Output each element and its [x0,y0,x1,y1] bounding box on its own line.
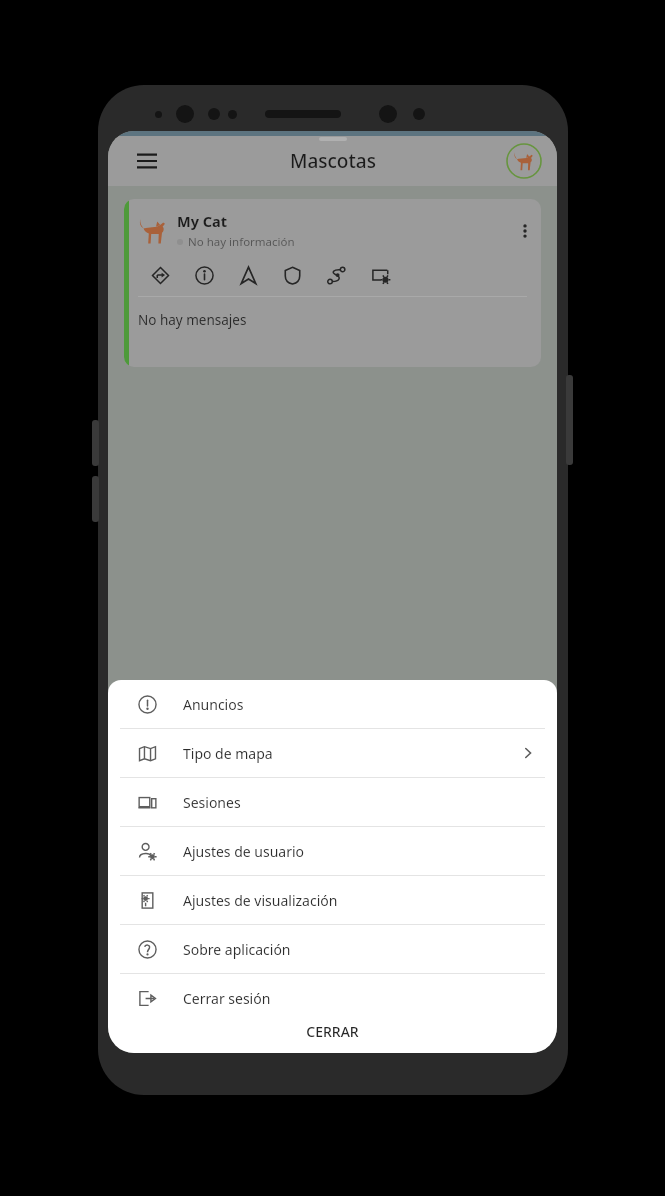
staticText: No hay mensajes [138,311,247,329]
staticText: Sesiones [183,793,241,812]
staticText: Sobre aplicación [183,940,291,959]
staticText: Tipo de mapa [183,744,273,763]
button[interactable]: Seguridad [270,260,314,290]
staticText: CERRAR [306,1022,359,1041]
button[interactable]: Información [182,260,226,290]
button[interactable]: Más opciones [509,215,541,247]
staticText: Mascotas [290,148,376,174]
button[interactable]: Cerrar sesión [108,974,557,1022]
button[interactable]: Sesiones [108,778,557,826]
staticText: Ajustes de visualización [183,891,338,910]
button[interactable]: Direcciones [138,260,182,290]
button[interactable]: My Cat [124,199,541,367]
button[interactable]: CERRAR [108,1022,557,1053]
button[interactable]: Perfil [505,142,543,180]
staticText: My Cat [177,211,228,231]
button[interactable]: Ajustes de visualización [108,876,557,924]
staticText: Ajustes de usuario [183,842,305,861]
button[interactable]: Ajustes de usuario [108,827,557,875]
button[interactable]: Tipo de mapa [108,729,557,777]
button[interactable]: Anuncios [108,680,557,728]
button[interactable]: Ruta [314,260,358,290]
button[interactable]: Dispositivo [358,260,402,290]
button[interactable]: Menú [130,144,164,178]
staticText: No hay información [188,234,295,250]
staticText: Cerrar sesión [183,989,271,1008]
button[interactable]: Navegar [226,260,270,290]
staticText: Anuncios [183,695,244,714]
button[interactable]: Sobre aplicación [108,925,557,973]
